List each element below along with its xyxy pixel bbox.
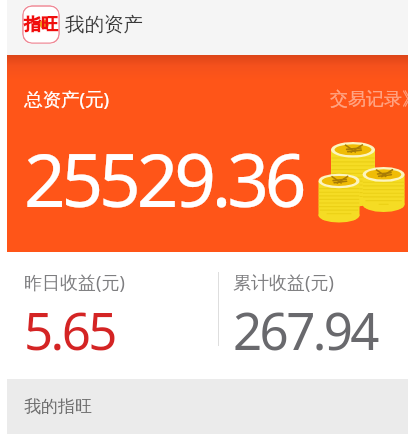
staticText: 总资产(元)	[24, 86, 110, 111]
staticText: 5.65	[24, 295, 115, 364]
button[interactable]: 总资产(元)	[7, 55, 408, 252]
staticText: 25529.36	[24, 129, 303, 228]
staticText: 我的资产	[65, 12, 143, 37]
button[interactable]: 交易记录》	[322, 83, 408, 116]
staticText: 交易记录》	[330, 88, 408, 111]
staticText: 累计收益(元)	[233, 270, 334, 295]
staticText: 指旺	[24, 14, 58, 35]
button[interactable]: 我的指旺	[7, 379, 408, 434]
button[interactable]: 指旺 logo	[22, 5, 60, 44]
staticText: 昨日收益(元)	[24, 270, 125, 295]
staticText: 267.94	[233, 295, 377, 364]
staticText: 我的指旺	[24, 396, 92, 417]
